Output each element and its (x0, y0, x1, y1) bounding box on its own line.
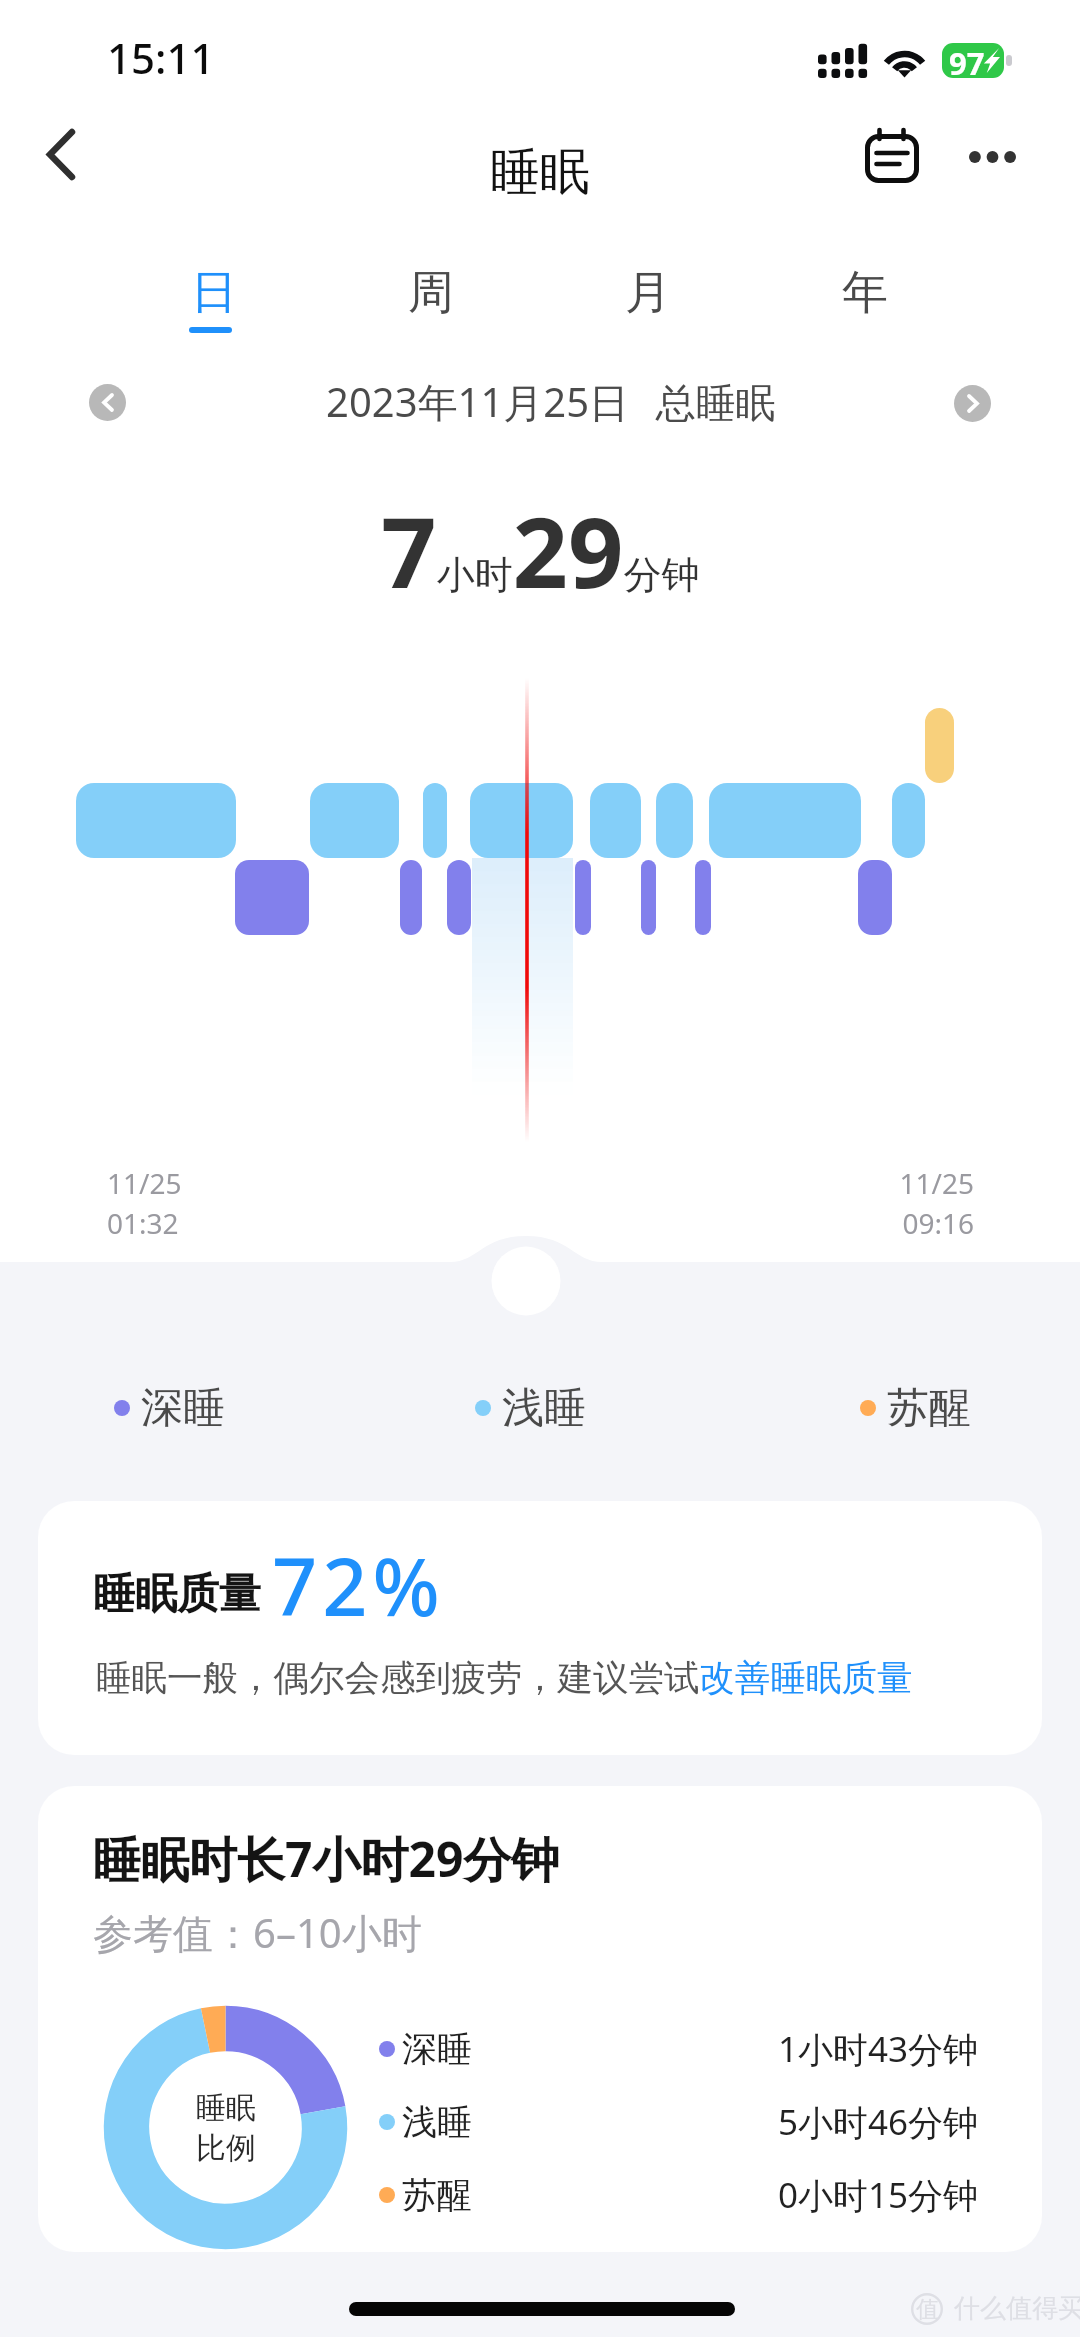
button[interactable]: Next day (954, 385, 991, 422)
button[interactable]: Notes (842, 107, 942, 207)
button[interactable]: 浅睡 (379, 2092, 979, 2152)
staticText: 苏醒 (887, 1382, 971, 1435)
staticText: 深睡 (141, 1382, 225, 1435)
staticText: 11/25 01:32 (107, 1164, 182, 1243)
button[interactable]: More options (945, 107, 1040, 207)
button[interactable]: 周 (322, 264, 539, 379)
staticText: 15:11 (107, 29, 215, 86)
staticText: 72% (272, 1532, 445, 1640)
button[interactable]: 深睡 (114, 1378, 225, 1438)
staticText: 苏醒 (402, 2173, 472, 2217)
staticText: 参考值：6–10小时 (93, 1905, 422, 1960)
staticText: 什么值得买 (954, 2292, 1080, 2325)
staticText: 97 (949, 43, 985, 77)
staticText: 值 (916, 2295, 939, 2324)
button[interactable]: 年 (756, 264, 973, 379)
staticText: 年 (842, 264, 888, 322)
staticText: 2023年11月25日 总睡眠 (326, 374, 776, 429)
staticText: 睡眠一般，偶尔会感到疲劳，建议尝试改善睡眠质量 (96, 1656, 913, 1701)
staticText: 浅睡 (402, 2100, 472, 2144)
button[interactable]: 深睡 (379, 2019, 979, 2079)
staticText: 7小时29分钟 (381, 484, 700, 616)
staticText: 月 (625, 264, 671, 322)
staticText: 睡眠质量 (93, 1568, 261, 1621)
button[interactable]: 睡眠质量 (38, 1501, 1042, 1755)
staticText: 周 (408, 264, 454, 322)
button[interactable]: 日 (105, 264, 322, 379)
button[interactable]: 苏醒 (379, 2165, 979, 2225)
button[interactable]: 月 (539, 264, 756, 379)
staticText: 日 (191, 264, 237, 322)
staticText: 睡眠 (490, 141, 590, 204)
staticText: 睡眠 比例 (196, 2089, 256, 2167)
staticText: 1小时43分钟 (778, 2025, 979, 2073)
staticText: 0小时15分钟 (778, 2171, 979, 2219)
staticText: 11/25 09:16 (800, 1164, 974, 1243)
button[interactable]: 浅睡 (475, 1378, 586, 1438)
staticText: 深睡 (402, 2027, 472, 2071)
button[interactable]: Previous day (89, 384, 126, 421)
staticText: 浅睡 (502, 1382, 586, 1435)
staticText: 5小时46分钟 (778, 2098, 979, 2146)
staticText: 睡眠时长7小时29分钟 (93, 1826, 560, 1892)
button[interactable]: 苏醒 (860, 1378, 971, 1438)
button[interactable]: Back (12, 106, 112, 206)
